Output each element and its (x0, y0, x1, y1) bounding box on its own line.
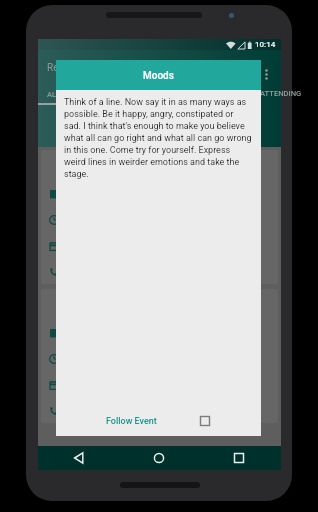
button[interactable] (41, 289, 278, 423)
button[interactable]: Recent apps (227, 446, 251, 470)
staticText: 10:14 (255, 40, 276, 49)
button[interactable]: Home (147, 446, 171, 470)
staticText: Follow Event (106, 416, 157, 427)
staticText: ATTENDING (260, 89, 302, 98)
staticText: Reminders (47, 62, 95, 74)
button[interactable]: ALL (38, 81, 142, 105)
button[interactable]: Back (67, 446, 91, 470)
button[interactable]: Follow event checkbox (191, 407, 211, 427)
staticText: ALL (47, 90, 61, 99)
staticText: Moods (143, 70, 174, 82)
button[interactable] (41, 150, 278, 284)
button[interactable]: Follow Event (106, 416, 157, 427)
button[interactable]: More options (256, 64, 276, 84)
staticText: Think of a line. Now say it in as many w… (64, 97, 252, 179)
button[interactable]: ATTENDING (142, 81, 281, 105)
